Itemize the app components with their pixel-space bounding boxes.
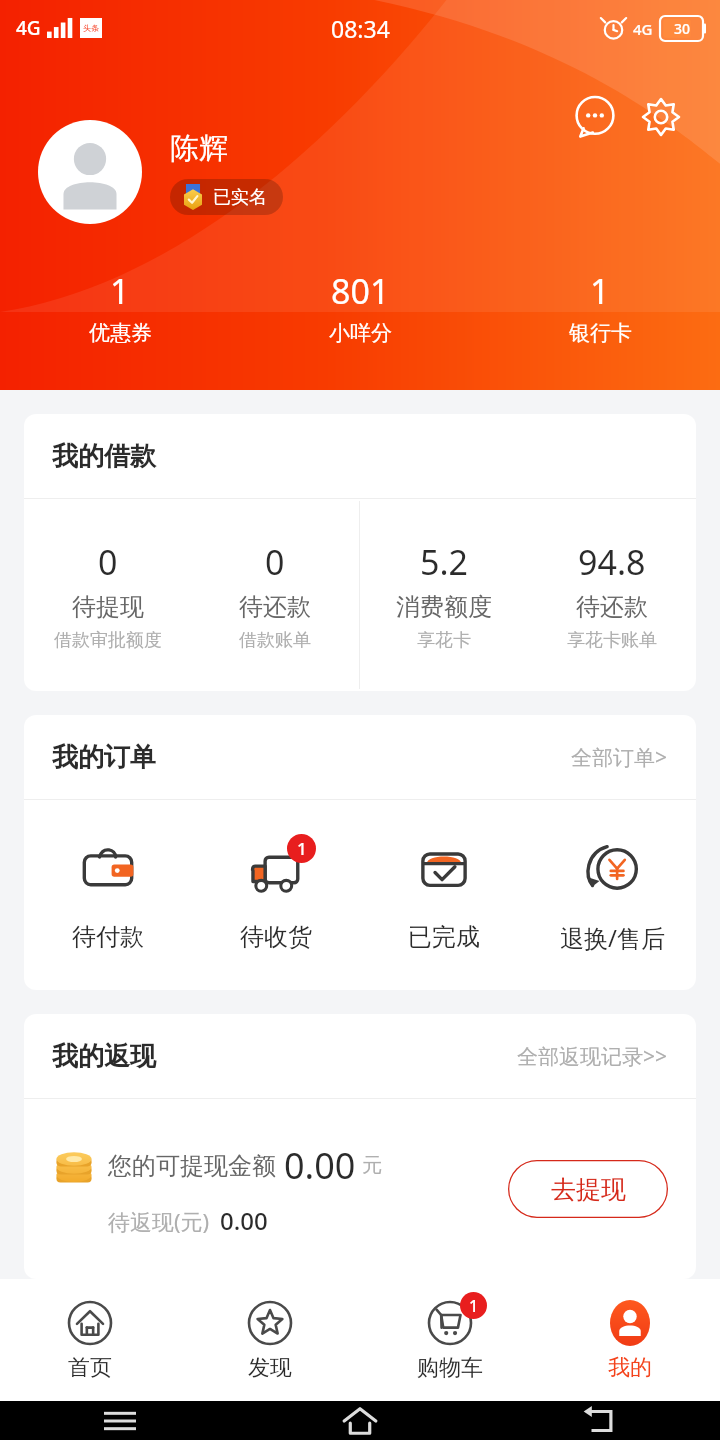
staticText: 1 <box>590 268 610 314</box>
button[interactable]: Recents <box>0 1401 240 1440</box>
staticText: 待付款 <box>72 922 144 952</box>
staticText: 4G <box>16 15 41 41</box>
staticText: 4G <box>633 19 653 39</box>
staticText: 0.00 <box>220 1204 268 1237</box>
staticText: 享花卡 <box>417 629 471 652</box>
staticText: 我的借款 <box>52 440 156 473</box>
staticText: 购物车 <box>417 1354 483 1382</box>
button[interactable]: 去提现 <box>508 1160 668 1218</box>
staticText: 801 <box>331 268 390 314</box>
button[interactable]: 陈辉 <box>38 120 283 224</box>
staticText: 5.2 <box>420 539 469 585</box>
staticText: 待提现 <box>72 592 144 622</box>
button[interactable]: 我的返现 <box>24 1014 696 1098</box>
button[interactable]: 801 <box>240 268 480 346</box>
staticText: 已完成 <box>408 922 480 952</box>
staticText: 已实名 <box>213 186 267 209</box>
staticText: 我的返现 <box>52 1040 156 1073</box>
staticText: 待收货 <box>240 922 312 952</box>
staticText: 我的 <box>608 1354 652 1382</box>
button[interactable]: 5.2 <box>360 499 528 691</box>
staticText: 1 <box>110 268 130 314</box>
staticText: 小咩分 <box>329 320 392 346</box>
staticText: 元 <box>362 1153 382 1178</box>
staticText: 0.00 <box>284 1141 356 1190</box>
staticText: 陈辉 <box>170 130 228 167</box>
button[interactable]: 1 <box>480 268 720 346</box>
staticText: 首页 <box>68 1354 112 1382</box>
staticText: 待还款 <box>239 592 311 622</box>
button[interactable]: 我的 <box>540 1279 720 1401</box>
button[interactable]: 发现 <box>180 1279 360 1401</box>
staticText: 1 <box>297 837 307 860</box>
staticText: 30 <box>674 19 691 38</box>
button[interactable]: 已实名 <box>170 179 283 215</box>
button[interactable]: 1 <box>192 800 360 990</box>
staticText: 发现 <box>248 1354 292 1382</box>
staticText: 消费额度 <box>396 592 492 622</box>
staticText: 我的订单 <box>52 741 156 774</box>
button[interactable]: 0 <box>191 499 359 691</box>
button[interactable]: 0 <box>24 499 191 691</box>
staticText: 0 <box>265 539 285 585</box>
staticText: 去提现 <box>551 1174 626 1205</box>
staticText: 借款审批额度 <box>54 629 162 652</box>
button[interactable]: 1 <box>0 268 240 346</box>
button[interactable]: Back <box>480 1401 720 1440</box>
button[interactable]: Settings <box>632 88 690 146</box>
staticText: 您的可提现金额 <box>108 1151 276 1181</box>
staticText: 优惠券 <box>89 320 152 346</box>
staticText: 待还款 <box>576 592 648 622</box>
button[interactable]: Home <box>240 1401 480 1440</box>
staticText: 头条 <box>83 23 99 33</box>
staticText: 94.8 <box>578 539 646 585</box>
staticText: 全部订单> <box>571 743 668 772</box>
button[interactable]: 已完成 <box>360 800 528 990</box>
button[interactable]: 我的订单 <box>24 715 696 799</box>
button[interactable]: 首页 <box>0 1279 180 1401</box>
staticText: 08:34 <box>331 13 390 44</box>
button[interactable]: 待付款 <box>24 800 192 990</box>
button[interactable]: 退换/售后 <box>528 800 696 990</box>
staticText: 待返现(元) <box>108 1206 210 1236</box>
staticText: 全部返现记录>> <box>517 1042 668 1071</box>
staticText: 享花卡账单 <box>567 629 657 652</box>
staticText: 银行卡 <box>569 320 632 346</box>
button[interactable]: 1 <box>360 1279 540 1401</box>
staticText: 退换/售后 <box>560 921 665 954</box>
button[interactable]: 94.8 <box>528 499 696 691</box>
staticText: 1 <box>469 1295 479 1317</box>
staticText: 借款账单 <box>239 629 311 652</box>
staticText: 0 <box>98 539 118 585</box>
button[interactable]: Messages <box>566 88 624 146</box>
